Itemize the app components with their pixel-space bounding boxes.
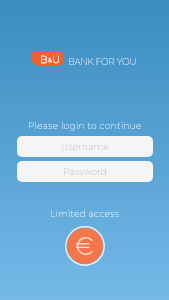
staticText: & xyxy=(48,56,52,64)
staticText: Password xyxy=(63,166,107,177)
button[interactable]: Limited access xyxy=(65,226,105,266)
staticText: BANK FOR YOU xyxy=(68,57,137,67)
staticText: Please login to continue xyxy=(28,121,142,132)
staticText: Username xyxy=(61,141,110,152)
staticText: Limited access xyxy=(50,209,120,220)
staticText: U xyxy=(52,53,60,65)
staticText: B xyxy=(40,53,48,65)
button[interactable]: Username xyxy=(17,136,153,157)
button[interactable]: Password xyxy=(17,161,153,182)
